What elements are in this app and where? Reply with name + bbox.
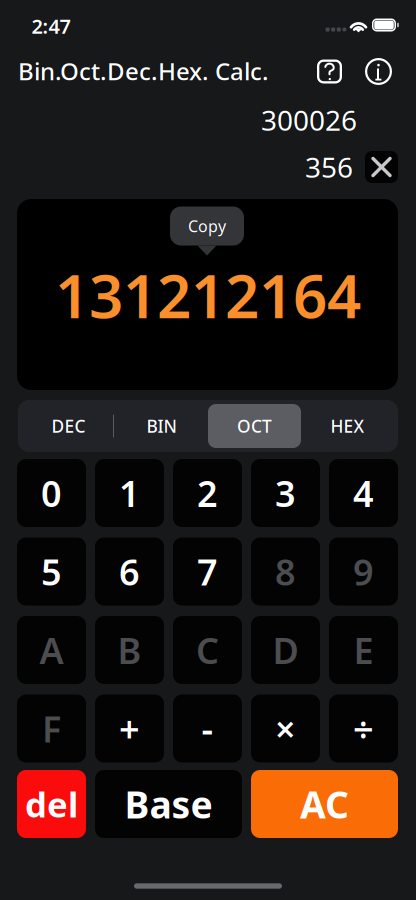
staticText: Copy — [188, 215, 226, 237]
button[interactable]: 0 — [17, 459, 86, 527]
staticText: 131212164 — [55, 255, 361, 335]
button[interactable]: 9 — [329, 537, 398, 605]
button[interactable]: - — [173, 694, 242, 762]
staticText: 0 — [41, 469, 62, 517]
button[interactable]: F — [17, 694, 86, 762]
button[interactable]: HEX — [301, 404, 394, 448]
button[interactable]: Clear — [365, 151, 398, 183]
staticText: 4 — [353, 469, 374, 517]
button[interactable]: 4 — [329, 459, 398, 527]
staticText: AC — [300, 779, 349, 829]
button[interactable]: A — [17, 616, 86, 684]
button[interactable]: + — [95, 694, 164, 762]
button[interactable]: C — [173, 616, 242, 684]
button[interactable]: 3 — [251, 459, 320, 527]
staticText: 356 — [305, 148, 353, 186]
button[interactable]: 5 — [17, 537, 86, 605]
staticText: E — [353, 626, 373, 674]
staticText: Base — [124, 779, 212, 829]
staticText: 9 — [353, 548, 374, 595]
button[interactable]: 7 — [173, 537, 242, 605]
staticText: + — [119, 705, 140, 752]
staticText: Bin.Oct.Dec.Hex. Calc. — [18, 55, 269, 87]
staticText: ÷ — [353, 705, 374, 752]
button[interactable]: Base — [95, 770, 242, 838]
staticText: 5 — [41, 548, 62, 595]
button[interactable]: E — [329, 616, 398, 684]
staticText: 2:47 — [31, 13, 70, 39]
staticText: 6 — [119, 548, 140, 595]
staticText: A — [39, 626, 63, 674]
staticText: HEX — [330, 414, 364, 437]
button[interactable]: × — [251, 694, 320, 762]
staticText: F — [42, 705, 61, 752]
button[interactable]: B — [95, 616, 164, 684]
button[interactable]: AC — [251, 770, 398, 838]
button[interactable]: D — [251, 616, 320, 684]
staticText: 7 — [197, 548, 218, 595]
staticText: 300026 — [261, 101, 357, 139]
staticText: 1 — [119, 469, 140, 517]
button[interactable]: 6 — [95, 537, 164, 605]
staticText: - — [201, 705, 213, 752]
staticText: 8 — [275, 548, 296, 595]
button[interactable]: del — [17, 770, 86, 838]
staticText: DEC — [51, 414, 85, 437]
staticText: D — [272, 626, 298, 674]
staticText: 3 — [275, 469, 296, 517]
button[interactable]: DEC — [22, 404, 115, 448]
staticText: OCT — [237, 414, 272, 437]
button[interactable]: Help — [309, 51, 349, 91]
staticText: B — [117, 626, 141, 674]
button[interactable]: 8 — [251, 537, 320, 605]
button[interactable]: 2 — [173, 459, 242, 527]
staticText: 2 — [197, 469, 218, 517]
button[interactable]: BIN — [115, 404, 208, 448]
button[interactable]: OCT — [208, 404, 301, 448]
button[interactable]: Info — [358, 51, 398, 91]
staticText: C — [196, 626, 219, 674]
staticText: del — [25, 781, 78, 827]
button[interactable]: ÷ — [329, 694, 398, 762]
button[interactable]: 1 — [95, 459, 164, 527]
staticText: × — [275, 705, 296, 752]
staticText: BIN — [146, 414, 176, 437]
